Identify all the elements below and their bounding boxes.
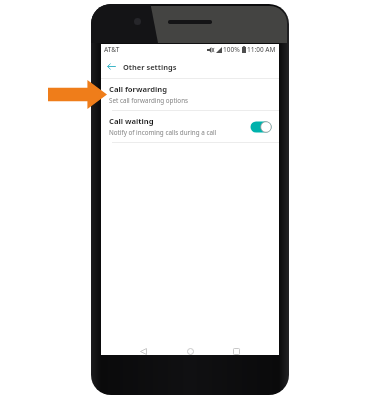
button[interactable]: Back (105, 60, 118, 73)
staticText: Notify of incoming calls during a call (109, 128, 217, 137)
staticText: Call forwarding (109, 84, 168, 94)
button[interactable]: Call forwarding (101, 79, 279, 111)
staticText: Call waiting (109, 116, 154, 126)
button[interactable]: Home (183, 348, 197, 355)
staticText: 11:00 AM (247, 45, 276, 54)
button[interactable]: Call waiting toggle (249, 120, 273, 134)
button[interactable]: Call waiting (101, 111, 279, 143)
staticText: AT&T (104, 45, 120, 54)
staticText: 100% (223, 45, 240, 54)
staticText: Other settings (123, 62, 177, 72)
button[interactable]: Back (136, 348, 150, 355)
button[interactable]: Recent apps (229, 348, 243, 355)
staticText: Set call forwarding options (109, 96, 189, 105)
